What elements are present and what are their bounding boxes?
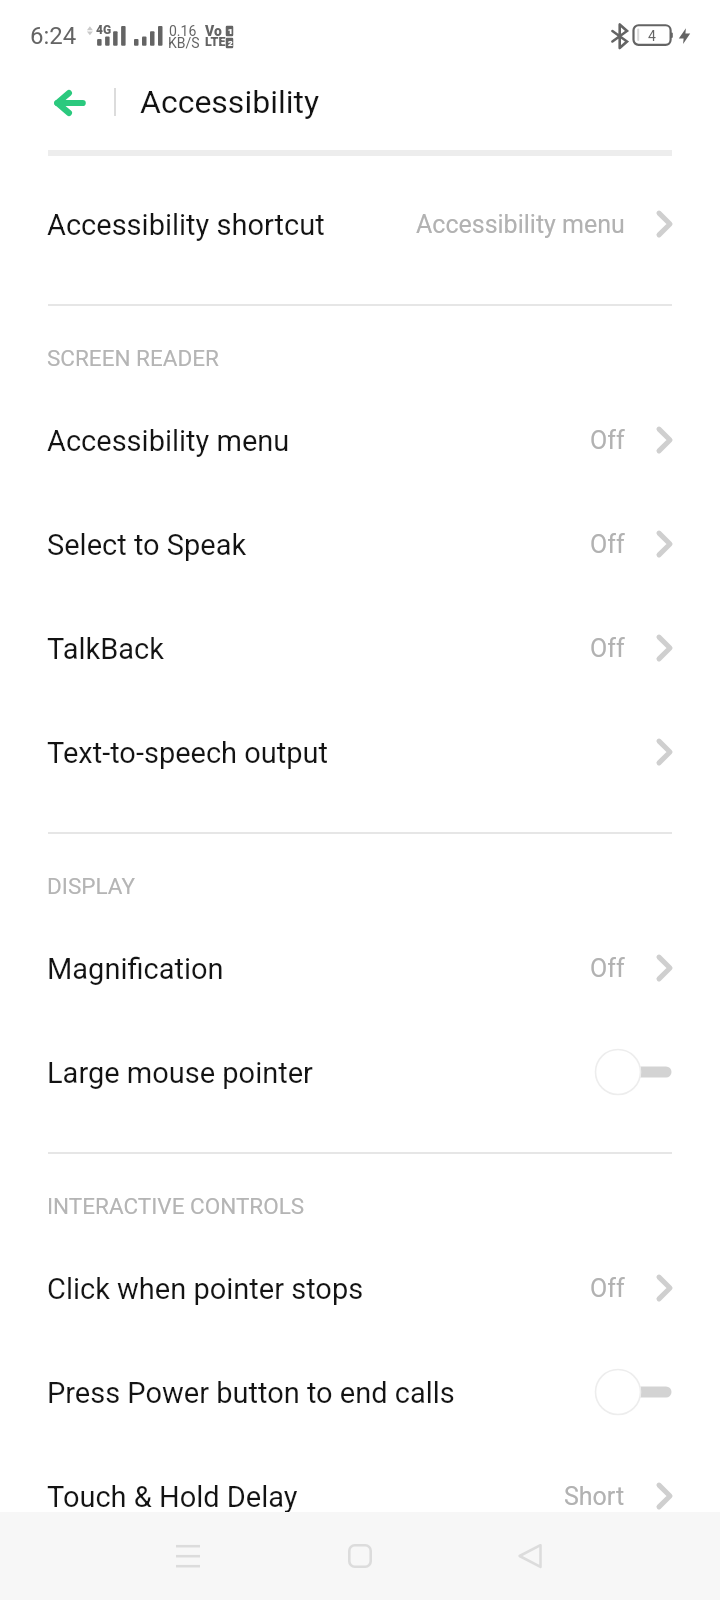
staticText: Press Power button to end calls bbox=[47, 1376, 455, 1410]
staticText: Large mouse pointer bbox=[47, 1056, 313, 1090]
staticText: Magnification bbox=[47, 952, 224, 986]
staticText: TalkBack bbox=[47, 632, 164, 666]
button[interactable]: Select to Speak bbox=[0, 492, 720, 596]
button[interactable]: Accessibility shortcut bbox=[0, 172, 720, 276]
staticText: DISPLAY bbox=[47, 873, 135, 899]
staticText: 0.16 bbox=[169, 23, 197, 39]
button[interactable]: Magnification bbox=[0, 916, 720, 1020]
button[interactable]: TalkBack bbox=[0, 596, 720, 700]
staticText: Off bbox=[590, 634, 625, 663]
staticText: 4G bbox=[96, 23, 112, 37]
staticText: Off bbox=[590, 530, 625, 559]
staticText: Click when pointer stops bbox=[47, 1272, 364, 1306]
staticText: Accessibility menu bbox=[416, 210, 625, 239]
staticText: Text-to-speech output bbox=[47, 736, 329, 770]
button[interactable]: Large mouse pointer bbox=[0, 1020, 720, 1124]
staticText: 1 bbox=[228, 27, 233, 36]
button[interactable]: Text-to-speech output bbox=[0, 700, 720, 804]
button[interactable]: Accessibility menu bbox=[0, 388, 720, 492]
button[interactable]: Recent apps bbox=[148, 1524, 228, 1588]
button[interactable]: Home bbox=[320, 1524, 400, 1588]
staticText: Accessibility menu bbox=[47, 424, 290, 458]
staticText: Accessibility bbox=[140, 83, 320, 121]
staticText: Off bbox=[590, 426, 625, 455]
staticText: 2 bbox=[228, 39, 233, 48]
staticText: INTERACTIVE CONTROLS bbox=[47, 1193, 305, 1219]
button[interactable]: Click when pointer stops bbox=[0, 1236, 720, 1340]
staticText: Short bbox=[564, 1482, 625, 1511]
staticText: Touch & Hold Delay bbox=[47, 1480, 298, 1514]
staticText: Vo bbox=[205, 23, 222, 39]
staticText: 6:24 bbox=[30, 22, 77, 50]
staticText: LTE bbox=[205, 34, 226, 49]
button[interactable]: Press Power button to end calls bbox=[0, 1340, 720, 1444]
staticText: SCREEN READER bbox=[47, 345, 219, 371]
staticText: 4 bbox=[648, 28, 656, 44]
staticText: Off bbox=[590, 1274, 625, 1303]
button[interactable]: Touch & Hold Delay bbox=[0, 1444, 720, 1548]
staticText: KB/S bbox=[168, 35, 200, 51]
button[interactable]: Navigate up bbox=[38, 73, 102, 133]
staticText: Select to Speak bbox=[47, 528, 247, 562]
staticText: Accessibility shortcut bbox=[47, 208, 325, 242]
staticText: Off bbox=[590, 954, 625, 983]
button[interactable]: Back bbox=[490, 1524, 570, 1588]
